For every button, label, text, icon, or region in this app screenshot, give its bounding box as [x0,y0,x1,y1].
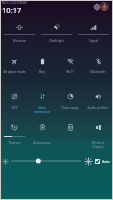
button[interactable]: Bluetooth [84,54,112,78]
button[interactable]: Data connection [28,90,56,116]
button[interactable]: Rotation [56,121,84,147]
button[interactable]: Automation [28,121,56,147]
staticText: Signal [75,39,112,43]
button[interactable]: Wi-Fi [56,54,84,78]
staticText: 10:17 [2,5,22,15]
staticText: Audio profiles [84,106,112,110]
button[interactable]: Signal [75,20,112,44]
button[interactable]: Airplane mode [1,54,28,78]
button[interactable]: Timeout [1,121,28,147]
button[interactable]: Btry [28,54,56,78]
staticText: Flashlight [38,39,75,43]
button[interactable]: Settings [93,3,101,11]
button[interactable]: Audio profiles [84,90,112,116]
button[interactable]: Vibration [1,20,38,44]
staticText: Timeout [1,141,28,145]
staticText: Bluetooth [84,70,112,74]
staticText: Btry [28,70,56,74]
staticText: Auto [102,159,110,164]
button[interactable]: Data usage [56,90,84,116]
staticText: Data connection [28,106,56,114]
staticText: Airplane mode [1,70,28,74]
staticText: GPS [1,106,28,110]
staticText: Wireless Display [84,141,112,149]
staticText: Data usage [56,106,84,110]
button[interactable]: Auto brightness [95,159,100,164]
button[interactable]: Flashlight [38,20,75,44]
staticText: Wi-Fi [56,70,84,74]
staticText: MON, 14 DECEMBER [2,1,27,5]
button[interactable]: Profile [100,2,109,11]
button[interactable]: Wireless Display [84,121,112,147]
button[interactable]: Brightness [11,156,81,166]
button[interactable]: GPS [1,90,28,116]
staticText: Vibration [1,39,38,43]
staticText: Automation [28,141,56,145]
